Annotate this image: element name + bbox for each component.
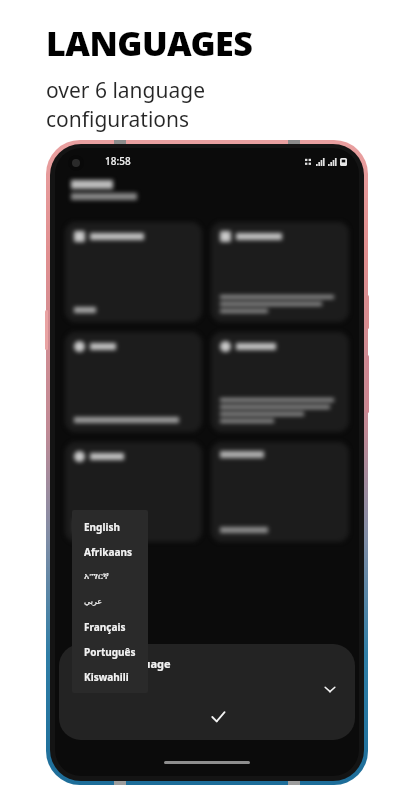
staticText: over 6 language — [46, 76, 206, 105]
button[interactable] — [211, 442, 349, 542]
button[interactable]: Français — [72, 614, 148, 639]
staticText: configurations — [46, 105, 190, 134]
staticText: عربي — [84, 597, 103, 606]
staticText: Change language — [75, 656, 171, 671]
button[interactable]: አማርኛ — [72, 564, 148, 589]
button[interactable]: Expand language list — [319, 678, 341, 700]
button[interactable]: Português — [72, 639, 148, 664]
button[interactable]: Afrikaans — [72, 539, 148, 564]
button[interactable]: Confirm language — [207, 706, 229, 728]
button[interactable] — [211, 332, 349, 432]
button[interactable]: Change language — [59, 644, 355, 740]
staticText: English — [84, 520, 120, 534]
button[interactable] — [65, 222, 202, 322]
button[interactable] — [65, 332, 202, 432]
staticText: Français — [84, 620, 126, 634]
button[interactable] — [65, 442, 202, 542]
staticText: Kiswahili — [84, 670, 129, 684]
staticText: Afrikaans — [84, 545, 132, 559]
button[interactable]: Kiswahili — [72, 664, 148, 689]
button[interactable]: English — [72, 514, 148, 539]
button[interactable]: عربي — [72, 589, 148, 614]
staticText: LANGUAGES — [46, 20, 253, 66]
staticText: አማርኛ — [84, 572, 109, 581]
button[interactable] — [211, 222, 349, 322]
staticText: Português — [84, 645, 136, 659]
staticText: 18:58 — [105, 154, 131, 168]
